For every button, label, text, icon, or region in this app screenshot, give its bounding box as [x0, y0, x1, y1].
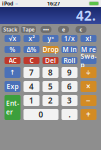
button[interactable]: 5: [42, 81, 58, 92]
button[interactable]: 1: [23, 95, 39, 106]
staticText: Enter: [6, 99, 19, 116]
button[interactable]: AC: [4, 57, 20, 64]
staticText: Del: [45, 56, 56, 65]
button[interactable]: .: [61, 109, 77, 120]
staticText: ÷: [86, 67, 91, 78]
staticText: 6: [67, 81, 72, 92]
staticText: 5: [48, 81, 53, 92]
staticText: Stack: [3, 26, 17, 33]
staticText: 0: [38, 109, 43, 120]
staticText: 4: [29, 81, 34, 92]
staticText: Exp: [6, 82, 18, 91]
staticText: +: [86, 109, 91, 120]
staticText: 42.: [76, 7, 96, 24]
button[interactable]: ↑: [4, 67, 20, 78]
button[interactable]: 3: [61, 95, 77, 106]
button[interactable]: M in: [61, 46, 77, 53]
button[interactable]: Swap: [80, 57, 96, 64]
button[interactable]: x!: [80, 35, 96, 42]
button[interactable]: Exp: [4, 81, 20, 92]
staticText: Drop: [42, 45, 58, 54]
staticText: 1: [29, 95, 34, 106]
staticText: x!: [85, 34, 91, 43]
button[interactable]: ÷: [80, 67, 96, 78]
button[interactable]: yˣ: [42, 35, 58, 42]
staticText: iPod: [2, 0, 13, 7]
button[interactable]: 2: [42, 95, 58, 106]
button[interactable]: 7: [23, 67, 39, 78]
staticText: 2: [48, 95, 53, 106]
button[interactable]: +: [80, 109, 96, 120]
button[interactable]: Undo: [58, 26, 69, 33]
button[interactable]: √x: [4, 35, 20, 42]
staticText: yˣ: [47, 34, 53, 43]
button[interactable]: 0: [23, 109, 58, 120]
staticText: Roll: [63, 56, 75, 65]
button[interactable]: 4: [23, 81, 39, 92]
staticText: M re: [81, 45, 96, 54]
staticText: 3: [67, 95, 72, 106]
staticText: ×: [86, 81, 91, 92]
button[interactable]: Del: [42, 57, 58, 64]
button[interactable]: Enter: [4, 95, 20, 120]
staticText: −: [86, 95, 91, 106]
staticText: AC: [8, 56, 16, 65]
staticText: M in: [62, 45, 76, 54]
staticText: x²: [28, 34, 34, 43]
staticText: 9: [67, 67, 72, 78]
staticText: Tape: [22, 26, 34, 33]
button[interactable]: Δ%: [23, 46, 39, 53]
staticText: Δ%: [26, 45, 36, 54]
staticText: 1/x: [64, 34, 75, 43]
staticText: c: [79, 26, 82, 33]
staticText: %: [9, 45, 15, 54]
button[interactable]: 9: [61, 67, 77, 78]
button[interactable]: Stack: [1, 26, 19, 33]
button[interactable]: −: [80, 95, 96, 106]
staticText: .: [68, 109, 70, 120]
staticText: ↑: [9, 69, 15, 76]
staticText: 8: [48, 67, 53, 78]
staticText: •••: [43, 26, 49, 33]
button[interactable]: Settings: [75, 26, 86, 33]
button[interactable]: Roll: [61, 57, 77, 64]
button[interactable]: More: [40, 26, 51, 33]
staticText: ~: [15, 0, 18, 7]
staticText: C: [29, 56, 33, 65]
staticText: e: [62, 26, 65, 33]
button[interactable]: C: [23, 57, 39, 64]
button[interactable]: 1/x: [61, 35, 77, 42]
staticText: 7: [29, 67, 34, 78]
staticText: 16:27: [47, 0, 60, 7]
button[interactable]: %: [4, 46, 20, 53]
button[interactable]: Tape: [21, 26, 36, 33]
button[interactable]: 6: [61, 81, 77, 92]
button[interactable]: Drop: [42, 46, 58, 53]
staticText: √x: [8, 34, 16, 43]
button[interactable]: 8: [42, 67, 58, 78]
button[interactable]: M re: [80, 46, 96, 53]
staticText: Swap: [80, 52, 96, 69]
button[interactable]: x²: [23, 35, 39, 42]
button[interactable]: ×: [80, 81, 96, 92]
